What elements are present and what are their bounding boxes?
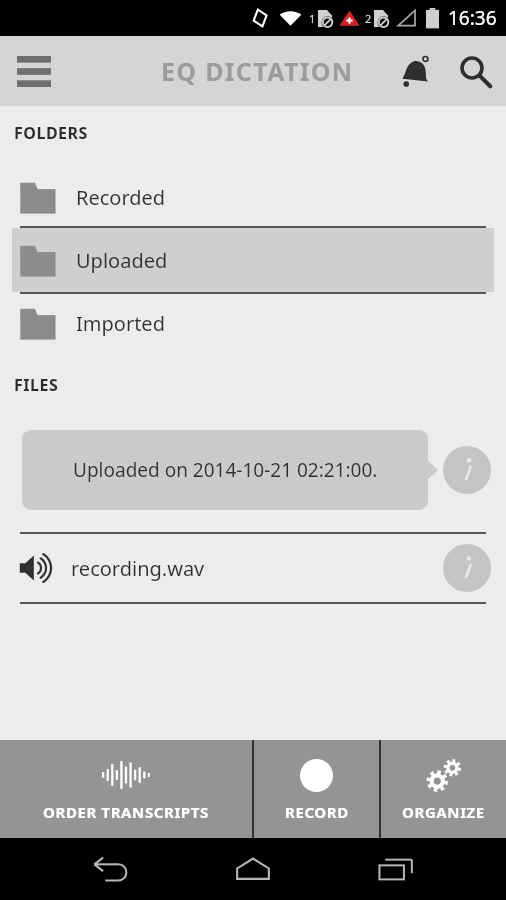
button[interactable]: Imported [0, 294, 506, 352]
staticText: FOLDERS [14, 122, 88, 144]
button[interactable]: File information [441, 444, 493, 496]
button[interactable]: Uploaded [12, 228, 494, 292]
staticText: 2 [365, 11, 372, 26]
staticText: 1 [309, 11, 316, 26]
button[interactable]: Recent apps [364, 838, 428, 900]
staticText: RECORD [285, 802, 349, 822]
staticText: ORGANIZE [402, 802, 485, 822]
button[interactable]: Uploaded on 2014-10-21 02:21:00. [22, 430, 428, 510]
button[interactable]: Search [444, 40, 506, 102]
button[interactable]: File information [441, 542, 493, 594]
staticText: Imported [76, 310, 165, 337]
button[interactable]: ORDER TRANSCRIPTS [0, 740, 252, 838]
staticText: Recorded [76, 184, 166, 211]
staticText: ORDER TRANSCRIPTS [43, 802, 209, 822]
staticText: recording.wav [71, 555, 205, 582]
button[interactable]: Back [79, 838, 143, 900]
staticText: Uploaded [76, 247, 168, 274]
staticText: 16:36 [448, 5, 497, 31]
button[interactable]: RECORD [254, 740, 379, 838]
button[interactable]: Home [221, 838, 285, 900]
staticText: FILES [14, 374, 59, 396]
staticText: Uploaded on 2014-10-21 02:21:00. [73, 457, 378, 483]
button[interactable]: recording.wav [0, 534, 506, 602]
button[interactable]: Recorded [0, 168, 506, 226]
button[interactable]: ORGANIZE [381, 740, 506, 838]
button[interactable]: Open navigation menu [6, 43, 62, 99]
button[interactable]: Notifications [386, 42, 444, 100]
staticText: EQ DICTATION [161, 54, 354, 88]
